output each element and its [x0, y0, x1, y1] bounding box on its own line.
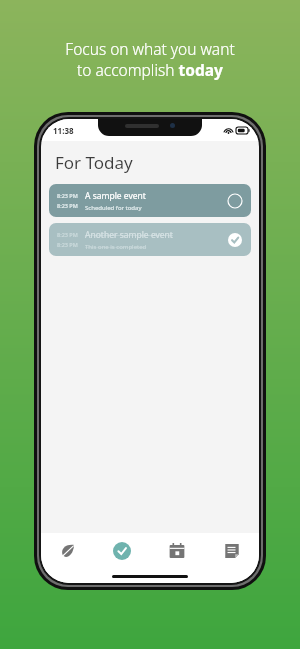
staticText: Scheduled for today [85, 204, 142, 212]
staticText: A sample event [85, 190, 146, 202]
button[interactable]: Calendar [149, 533, 204, 569]
staticText: For Today [55, 151, 133, 174]
button[interactable]: Today [95, 533, 149, 569]
button[interactable]: 8:23 PM [49, 223, 251, 256]
staticText: 8:23 PM [57, 231, 78, 238]
button[interactable]: 8:23 PM [49, 184, 251, 217]
staticText: Focus on what you want to accomplish tod… [65, 38, 235, 81]
staticText: 8:23 PM [57, 202, 78, 209]
staticText: 8:23 PM [57, 192, 78, 199]
staticText: 11:38 [53, 125, 74, 136]
staticText: 8:23 PM [57, 241, 78, 248]
button[interactable]: Habits [41, 533, 95, 569]
button[interactable]: Notes [204, 533, 259, 569]
button[interactable]: Completed [227, 232, 243, 248]
staticText: Another sample event [85, 229, 173, 241]
button[interactable]: Mark complete [227, 193, 243, 209]
staticText: This one is completed [85, 243, 147, 251]
